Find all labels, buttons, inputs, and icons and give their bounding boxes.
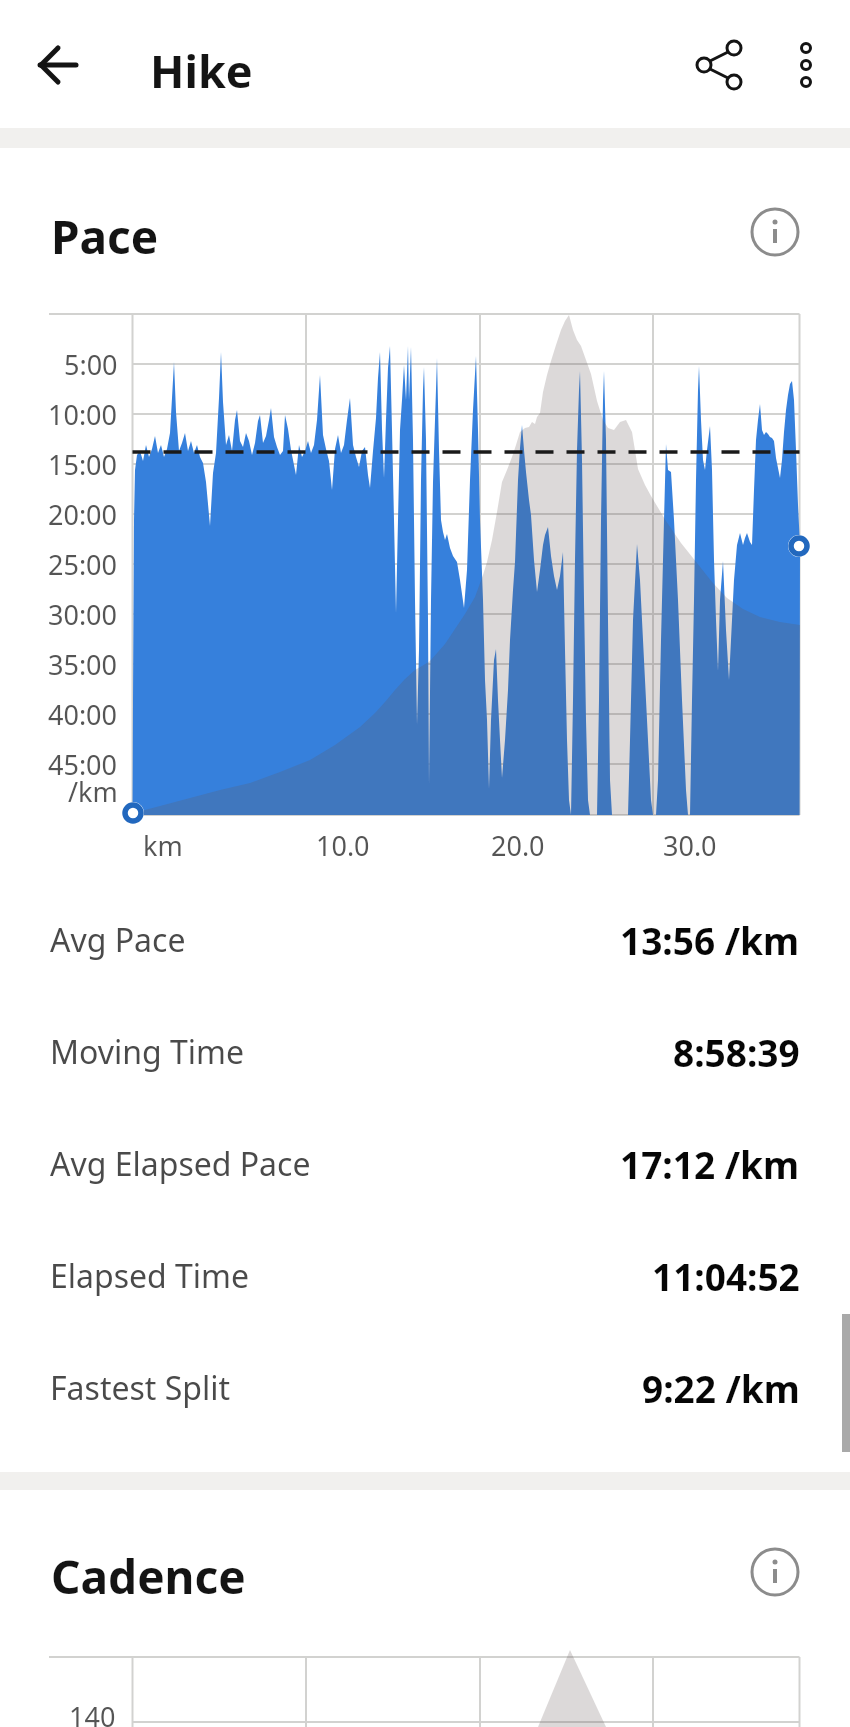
staticText: Elapsed Time	[50, 1254, 250, 1298]
button[interactable]	[26, 36, 86, 96]
button[interactable]	[684, 30, 754, 100]
staticText: 15:00	[48, 446, 118, 483]
button[interactable]: Avg Pace	[0, 900, 850, 980]
staticText: 20:00	[48, 496, 118, 533]
staticText: 35:00	[48, 646, 118, 683]
staticText: 40:00	[48, 696, 118, 733]
staticText: 140	[69, 1698, 116, 1727]
staticText: 9:22 /km	[642, 1363, 800, 1413]
staticText: /km	[68, 773, 118, 810]
staticText: 10:00	[48, 396, 118, 433]
button[interactable]: Avg Elapsed Pace	[0, 1124, 850, 1204]
staticText: Avg Pace	[50, 918, 186, 962]
button[interactable]: Fastest Split	[0, 1348, 850, 1428]
staticText: km	[143, 827, 183, 864]
staticText: 17:12 /km	[620, 1139, 800, 1189]
button[interactable]	[745, 1542, 805, 1602]
staticText: 8:58:39	[673, 1027, 800, 1077]
button[interactable]	[745, 202, 805, 262]
staticText: 30.0	[663, 827, 717, 864]
staticText: Fastest Split	[50, 1366, 231, 1410]
staticText: 11:04:52	[652, 1251, 800, 1301]
staticText: Moving Time	[50, 1030, 245, 1074]
staticText: 13:56 /km	[620, 915, 800, 965]
staticText: Hike	[150, 40, 253, 101]
staticText: 10.0	[316, 827, 370, 864]
staticText: 25:00	[48, 546, 118, 583]
staticText: Avg Elapsed Pace	[50, 1142, 311, 1186]
button[interactable]	[776, 30, 836, 90]
staticText: Cadence	[51, 1545, 246, 1608]
staticText: Pace	[51, 205, 159, 268]
button[interactable]: Moving Time	[0, 1012, 850, 1092]
staticText: 45:00	[48, 746, 118, 783]
staticText: 20.0	[491, 827, 545, 864]
button[interactable]: Elapsed Time	[0, 1236, 850, 1316]
staticText: 5:00	[64, 346, 118, 383]
staticText: 30:00	[48, 596, 118, 633]
